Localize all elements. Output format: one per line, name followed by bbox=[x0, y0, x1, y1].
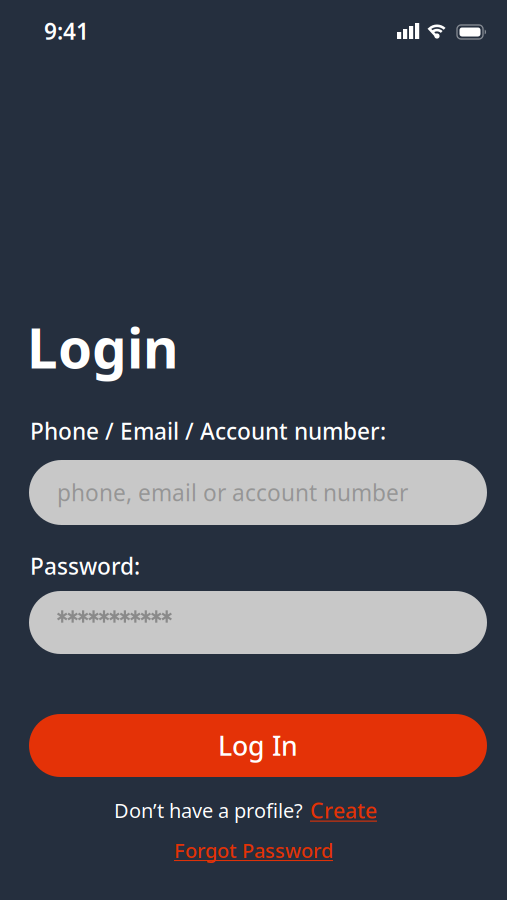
button[interactable]: Password bbox=[29, 591, 487, 654]
staticText: Phone / Email / Account number: bbox=[30, 416, 386, 446]
staticText: 9:41 bbox=[44, 16, 89, 46]
button[interactable]: Forgot Password bbox=[174, 837, 333, 864]
staticText: Forgot Password bbox=[174, 837, 333, 864]
staticText: Log In bbox=[218, 728, 298, 763]
button[interactable]: Log In bbox=[29, 714, 487, 777]
button[interactable]: Phone, email or account number bbox=[29, 460, 487, 525]
staticText: phone, email or account number bbox=[57, 477, 408, 507]
staticText: Password: bbox=[30, 551, 140, 581]
staticText: Login bbox=[27, 311, 179, 384]
staticText: Don’t have a profile? bbox=[114, 797, 303, 823]
button[interactable]: Create bbox=[310, 796, 377, 824]
staticText: Create bbox=[310, 796, 377, 824]
